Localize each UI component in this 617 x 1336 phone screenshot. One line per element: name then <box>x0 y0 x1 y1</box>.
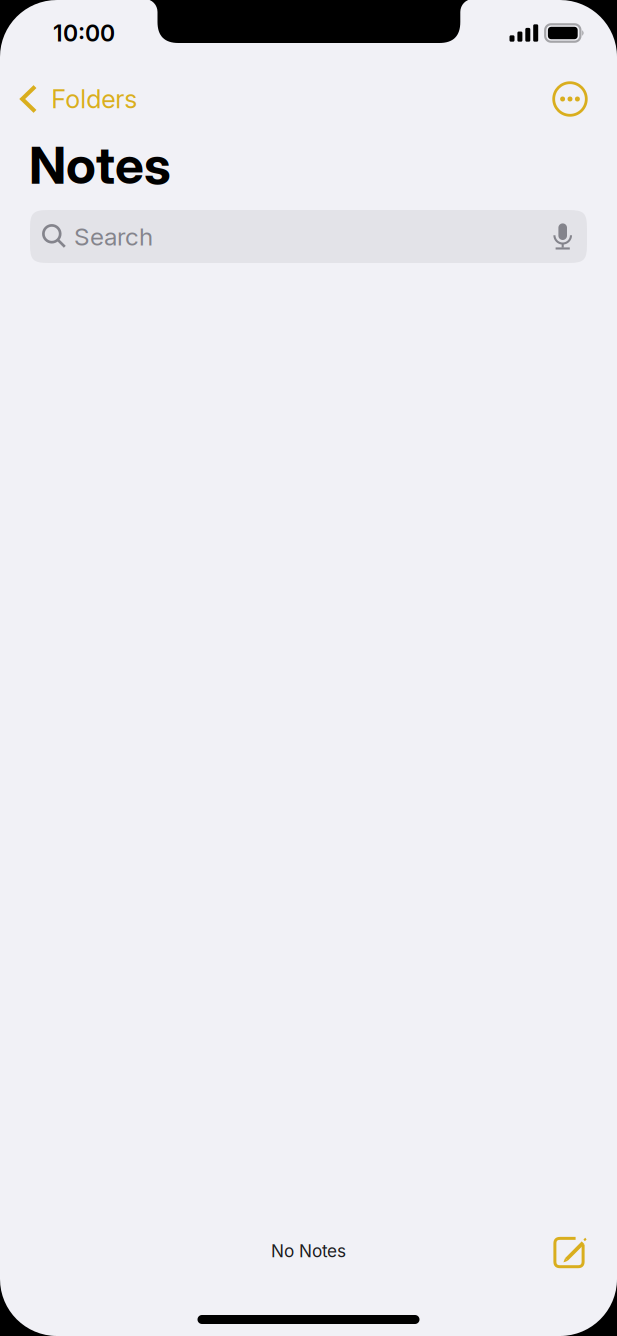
staticText: No Notes <box>271 1241 346 1261</box>
button[interactable]: More <box>545 74 617 124</box>
button[interactable]: Folders <box>0 74 147 124</box>
staticText: Notes <box>29 134 171 196</box>
button[interactable]: Search <box>30 210 587 263</box>
staticText: Folders <box>51 84 137 114</box>
staticText: Search <box>74 222 153 251</box>
button[interactable]: New Note <box>544 1225 617 1277</box>
staticText: 10:00 <box>53 19 115 47</box>
